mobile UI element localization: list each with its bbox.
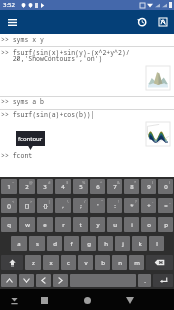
button[interactable]: n <box>112 255 127 270</box>
staticText: >> fsurf(sin(x)+sin(y)-(x^2+y^2)/ 20,'Sh… <box>1 48 130 63</box>
button[interactable]: History <box>133 13 151 31</box>
button[interactable]: e <box>37 217 53 232</box>
button[interactable]: t <box>73 217 88 232</box>
staticText: ) <box>169 180 171 185</box>
button[interactable]: b <box>95 255 110 270</box>
staticText: ! <box>118 199 120 204</box>
button[interactable]: k <box>132 236 147 251</box>
staticText: >> syms a b <box>1 97 44 106</box>
button[interactable]: Hide keyboard <box>7 293 21 307</box>
staticText: | <box>48 199 51 204</box>
button[interactable]: p <box>158 217 173 232</box>
staticText: q <box>7 221 11 229</box>
button[interactable]: w <box>19 217 35 232</box>
button[interactable]: Surface plot thumbnail <box>146 66 170 90</box>
staticText: * <box>134 180 137 185</box>
button[interactable]: l <box>149 236 164 251</box>
button[interactable]: Recent apps <box>121 291 139 309</box>
staticText: r <box>62 221 65 229</box>
staticText: . <box>144 277 146 285</box>
button[interactable]: + <box>141 198 156 213</box>
button[interactable]: {} <box>37 198 53 213</box>
button[interactable]: i <box>124 217 139 232</box>
staticText: m <box>134 259 140 267</box>
button[interactable]: left <box>36 274 51 287</box>
staticText: t <box>79 221 82 229</box>
button[interactable]: d <box>47 236 62 251</box>
staticText: & <box>117 180 120 185</box>
button[interactable]: () <box>1 198 17 213</box>
button[interactable]: up <box>1 274 17 287</box>
button[interactable]: y <box>90 217 105 232</box>
button[interactable]: down <box>19 274 34 287</box>
button[interactable]: [] <box>19 198 35 213</box>
staticText: >> syms x y <box>1 35 44 44</box>
staticText: 1 <box>7 183 11 191</box>
staticText: w <box>25 221 30 229</box>
staticText: ; <box>80 202 82 210</box>
button[interactable]: bksp <box>146 255 173 270</box>
staticText: >> fsurf(sin(a)+cos(b))| <box>1 110 95 119</box>
button[interactable]: h <box>98 236 113 251</box>
button[interactable]: x <box>43 255 59 270</box>
button[interactable]: * <box>124 198 139 213</box>
button[interactable]: . <box>138 274 151 287</box>
button[interactable]: right <box>53 274 68 287</box>
staticText: 8 <box>130 183 134 191</box>
button[interactable]: 0 <box>158 179 173 194</box>
button[interactable]: 1 <box>1 179 17 194</box>
button[interactable]: Open navigation menu <box>3 13 21 31</box>
button[interactable]: g <box>81 236 96 251</box>
staticText: _ <box>169 199 171 204</box>
button[interactable]: 5 <box>73 179 88 194</box>
staticText: " <box>101 199 103 204</box>
button[interactable]: , <box>55 198 71 213</box>
staticText: 3 <box>43 183 47 191</box>
button[interactable]: a <box>11 236 27 251</box>
staticText: v <box>84 259 88 267</box>
button[interactable]: 8 <box>124 179 139 194</box>
staticText: n <box>118 259 122 267</box>
staticText: @ <box>29 180 33 185</box>
button[interactable]: m <box>129 255 144 270</box>
button[interactable]: : <box>107 198 122 213</box>
staticText: ^ <box>100 180 103 185</box>
staticText: ' <box>97 202 99 210</box>
button[interactable]: Back <box>35 291 53 309</box>
button[interactable]: = <box>158 198 173 213</box>
button[interactable]: v <box>78 255 93 270</box>
button[interactable]: Plots <box>154 13 172 31</box>
button[interactable]: 6 <box>90 179 105 194</box>
button[interactable]: 7 <box>107 179 122 194</box>
button[interactable]: f <box>64 236 79 251</box>
button[interactable]: u <box>107 217 122 232</box>
button[interactable]: r <box>55 217 71 232</box>
button[interactable]: s <box>29 236 45 251</box>
staticText: < <box>12 199 15 204</box>
button[interactable]: 4 <box>55 179 71 194</box>
button[interactable]: ; <box>73 198 88 213</box>
button[interactable]: 9 <box>141 179 156 194</box>
button[interactable]: 3 <box>37 179 53 194</box>
button[interactable]: c <box>61 255 76 270</box>
staticText: / <box>84 199 86 204</box>
staticText: $ <box>66 180 69 185</box>
staticText: h <box>104 240 108 248</box>
button[interactable]: Home <box>78 291 96 309</box>
button[interactable]: Surface plot thumbnail <box>146 122 170 146</box>
staticText: fcontour <box>18 135 43 143</box>
button[interactable]: o <box>141 217 156 232</box>
staticText: j <box>122 240 124 248</box>
staticText: 9 <box>147 183 151 191</box>
staticText: d <box>53 240 57 248</box>
button[interactable]: 2 <box>19 179 35 194</box>
staticText: ~ <box>12 180 15 185</box>
button[interactable]: ' <box>90 198 105 213</box>
staticText: u <box>113 221 117 229</box>
button[interactable]: j <box>115 236 130 251</box>
button[interactable]: q <box>1 217 17 232</box>
button[interactable]: enter <box>153 274 173 287</box>
button[interactable]: shift <box>1 255 23 270</box>
button[interactable]: z <box>25 255 41 270</box>
